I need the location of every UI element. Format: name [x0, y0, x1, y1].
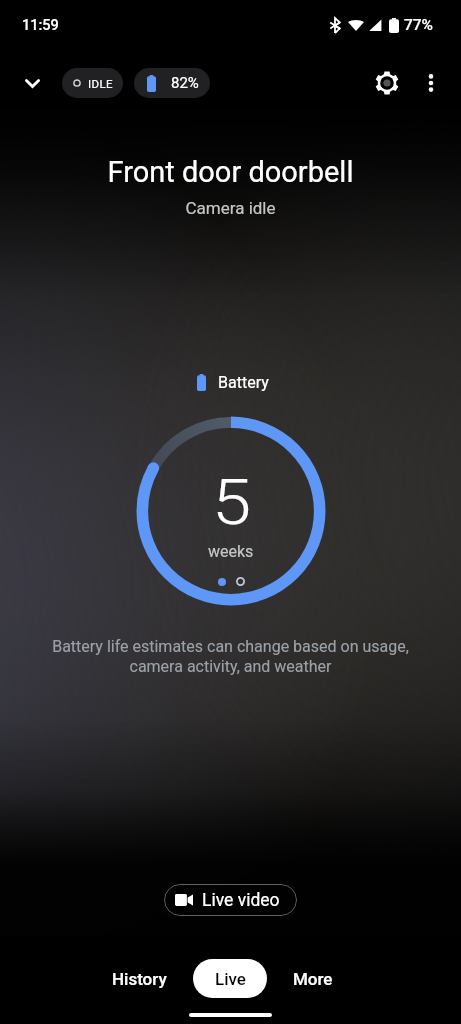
- staticText: History: [112, 969, 167, 989]
- button[interactable]: Live video: [164, 884, 297, 916]
- staticText: Camera idle: [0, 198, 461, 218]
- staticText: 77%: [404, 16, 434, 34]
- staticText: Front door doorbell: [0, 155, 461, 189]
- staticText: IDLE: [88, 77, 114, 90]
- button[interactable]: Settings: [365, 61, 409, 105]
- button[interactable]: History: [98, 961, 181, 997]
- staticText: Live video: [202, 890, 280, 911]
- staticText: 11:59: [22, 17, 59, 34]
- button[interactable]: 82%: [134, 68, 210, 98]
- button[interactable]: Live: [193, 959, 267, 998]
- staticText: 82%: [171, 74, 199, 92]
- staticText: Live: [215, 969, 246, 989]
- button[interactable]: Collapse: [13, 64, 51, 102]
- staticText: 5: [212, 466, 251, 540]
- staticText: Battery: [218, 373, 269, 392]
- button[interactable]: More: [279, 961, 347, 997]
- staticText: weeks: [208, 542, 254, 561]
- button[interactable]: More options: [409, 61, 453, 105]
- staticText: More: [293, 969, 333, 989]
- button[interactable]: IDLE: [62, 68, 123, 98]
- staticText: Battery life estimates can change based …: [0, 637, 461, 676]
